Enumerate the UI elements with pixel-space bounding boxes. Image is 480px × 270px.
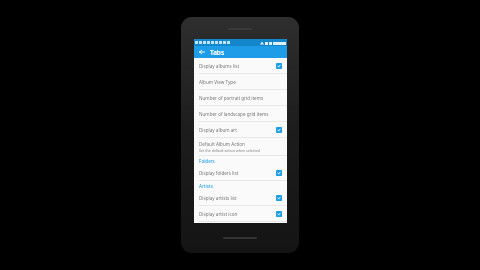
staticText: Display artist icon bbox=[199, 211, 274, 217]
button[interactable]: Display artists list bbox=[194, 190, 287, 205]
button[interactable]: Display album art bbox=[194, 122, 287, 137]
button[interactable]: Toggle setting bbox=[274, 209, 283, 218]
button[interactable]: Default Album Action bbox=[194, 138, 287, 155]
staticText: Album View Type bbox=[199, 79, 283, 85]
staticText: Display artists list bbox=[199, 195, 274, 201]
button[interactable]: Display artist icon bbox=[194, 206, 287, 221]
button[interactable]: Album View Type bbox=[194, 74, 287, 89]
staticText: Default Album Action bbox=[199, 141, 245, 147]
button[interactable]: Toggle setting bbox=[274, 61, 283, 70]
button[interactable]: Back bbox=[197, 47, 207, 57]
button[interactable]: Toggle setting bbox=[274, 168, 283, 177]
staticText: Set the default action when selected bbox=[199, 148, 261, 153]
staticText: Display album art bbox=[199, 127, 274, 133]
staticText: Number of landscape grid items bbox=[199, 111, 283, 117]
staticText: Tabs bbox=[210, 48, 225, 57]
button[interactable]: Toggle setting bbox=[274, 193, 283, 202]
button[interactable]: Display folders list bbox=[194, 165, 287, 180]
staticText: Number of portrait grid items bbox=[199, 95, 283, 101]
staticText: Artists bbox=[199, 183, 213, 189]
button[interactable]: Toggle setting bbox=[274, 125, 283, 134]
button[interactable]: Number of portrait grid items bbox=[194, 90, 287, 105]
button[interactable]: Number of landscape grid items bbox=[194, 106, 287, 121]
button[interactable]: Display albums list bbox=[194, 58, 287, 73]
staticText: Folders bbox=[199, 158, 215, 164]
staticText: Display folders list bbox=[199, 170, 274, 176]
staticText: Display albums list bbox=[199, 63, 274, 69]
